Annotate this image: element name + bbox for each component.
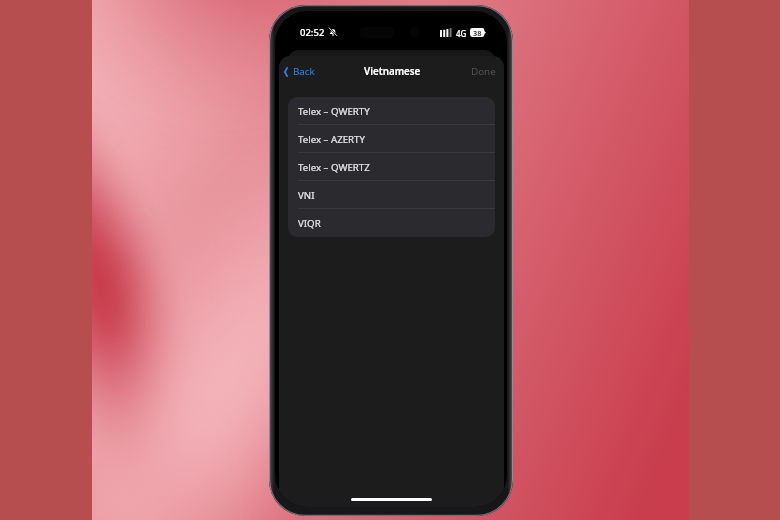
staticText: Back: [293, 65, 315, 78]
staticText: Telex – QWERTZ: [298, 161, 370, 174]
button[interactable]: Telex – QWERTZ: [288, 153, 495, 181]
staticText: Telex – QWERTY: [298, 105, 370, 118]
staticText: VIQR: [298, 217, 321, 230]
button[interactable]: Back: [279, 59, 323, 84]
other: Cellular signal strength: [440, 28, 451, 37]
button[interactable]: VNI: [288, 181, 495, 209]
button[interactable]: Telex – AZERTY: [288, 125, 495, 153]
button[interactable]: Telex – QWERTY: [288, 97, 495, 125]
staticText: 38: [473, 28, 482, 38]
other: Silent mode on: [329, 28, 337, 36]
button[interactable]: VIQR: [288, 209, 495, 237]
staticText: VNI: [298, 189, 315, 202]
staticText: Telex – AZERTY: [298, 133, 365, 146]
button[interactable]: Done: [461, 59, 504, 84]
staticText: Vietnamese: [364, 65, 421, 78]
other: Battery 38 percent: [470, 28, 486, 37]
staticText: 02:52: [300, 26, 325, 39]
staticText: Done: [471, 65, 496, 78]
staticText: 4G: [456, 28, 467, 39]
